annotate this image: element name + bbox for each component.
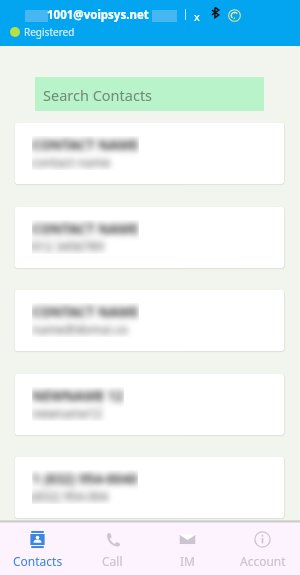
- staticText: Search Contacts: [43, 85, 153, 105]
- button[interactable]: 1 (832) 954-0040: [15, 457, 284, 518]
- button[interactable]: NEWNAME 12: [15, 374, 284, 435]
- button[interactable]: Account: [225, 530, 300, 569]
- staticText: 1001@voipsys.net: [47, 7, 149, 23]
- staticText: CONTACT NAME: [32, 220, 139, 238]
- button[interactable]: Contacts: [0, 530, 75, 569]
- button[interactable]: IM: [150, 530, 225, 569]
- staticText: contact name: [32, 154, 111, 170]
- staticText: Contacts: [13, 553, 63, 569]
- staticText: CONTACT NAME: [32, 136, 139, 154]
- button[interactable]: Search Contacts: [35, 77, 264, 111]
- staticText: IM: [180, 553, 195, 569]
- button[interactable]: CONTACT NAME: [15, 207, 284, 268]
- staticText: Registered: [24, 25, 75, 39]
- other: Sync: [228, 9, 241, 22]
- other: Bluetooth: [210, 7, 221, 18]
- button[interactable]: CONTACT NAME: [15, 123, 284, 184]
- button[interactable]: Call: [75, 530, 150, 569]
- staticText: (832) 954-004: [32, 488, 109, 504]
- staticText: Call: [102, 553, 123, 569]
- staticText: newname12: [32, 405, 103, 421]
- button[interactable]: CONTACT NAME: [15, 290, 284, 351]
- staticText: 1 (832) 954-0040: [32, 470, 138, 488]
- staticText: Account: [240, 553, 286, 569]
- staticText: 012 3456789: [32, 238, 104, 254]
- staticText: name@domai.co: [32, 321, 129, 337]
- staticText: NEWNAME 12: [32, 387, 124, 405]
- staticText: CONTACT NAME: [32, 303, 139, 321]
- staticText: x: [194, 9, 200, 24]
